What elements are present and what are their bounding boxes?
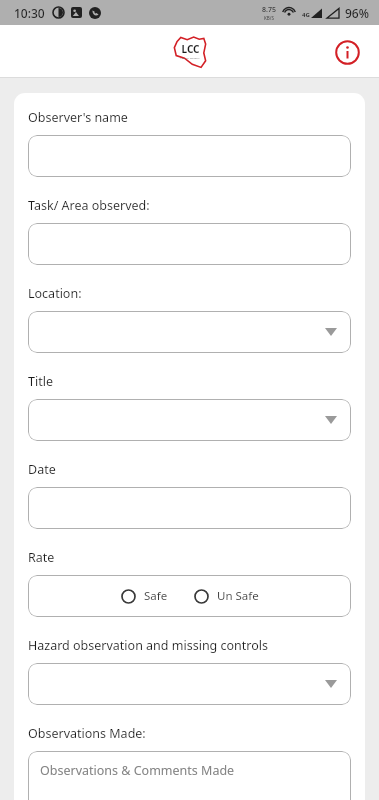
button[interactable]: [28, 223, 351, 265]
button[interactable]: [28, 135, 351, 177]
staticText: Un Safe: [217, 588, 259, 604]
staticText: KB/S: [264, 15, 274, 21]
staticText: LCC: [181, 42, 200, 56]
button[interactable]: Information: [329, 34, 365, 70]
button[interactable]: Open dropdown: [28, 663, 351, 705]
staticText: Observer's name: [28, 109, 128, 126]
staticText: Task/ Area observed:: [28, 197, 150, 214]
staticText: Hazard observation and missing controls: [28, 637, 269, 654]
button[interactable]: Observations & Comments Made: [28, 751, 351, 800]
button[interactable]: Open dropdown: [28, 311, 351, 353]
staticText: Observations & Comments Made: [40, 762, 235, 779]
button[interactable]: Safe: [119, 588, 170, 604]
staticText: Date: [28, 461, 56, 478]
staticText: Observations Made:: [28, 725, 146, 742]
staticText: LIBYAN CEMENT: [180, 56, 200, 59]
button[interactable]: Un Safe: [192, 588, 261, 604]
staticText: 4G: [302, 11, 310, 19]
staticText: Title: [28, 373, 53, 390]
staticText: 10:30: [14, 5, 45, 21]
button[interactable]: [28, 487, 351, 529]
staticText: Location:: [28, 285, 82, 302]
staticText: 8.75: [262, 5, 276, 15]
button[interactable]: Open dropdown: [28, 399, 351, 441]
staticText: Safe: [144, 588, 168, 604]
staticText: 96%: [345, 5, 369, 21]
staticText: Rate: [28, 549, 55, 566]
